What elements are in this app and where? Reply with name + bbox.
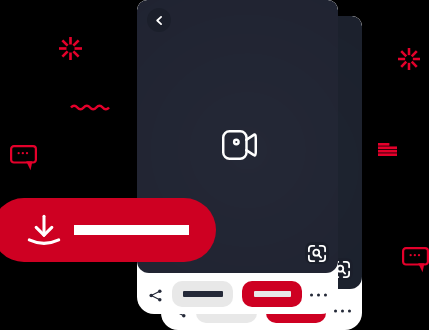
button[interactable]: Scan: [329, 258, 353, 280]
button[interactable]: [242, 281, 302, 307]
button[interactable]: Share: [149, 289, 162, 302]
button[interactable]: Scan: [305, 242, 329, 264]
button[interactable]: More options: [310, 288, 327, 302]
button[interactable]: Share: [173, 305, 186, 318]
button[interactable]: Back: [147, 8, 171, 32]
button[interactable]: More options: [334, 304, 351, 318]
button[interactable]: [266, 297, 326, 323]
button[interactable]: [0, 198, 216, 262]
button[interactable]: [196, 297, 257, 323]
button[interactable]: [172, 281, 233, 307]
